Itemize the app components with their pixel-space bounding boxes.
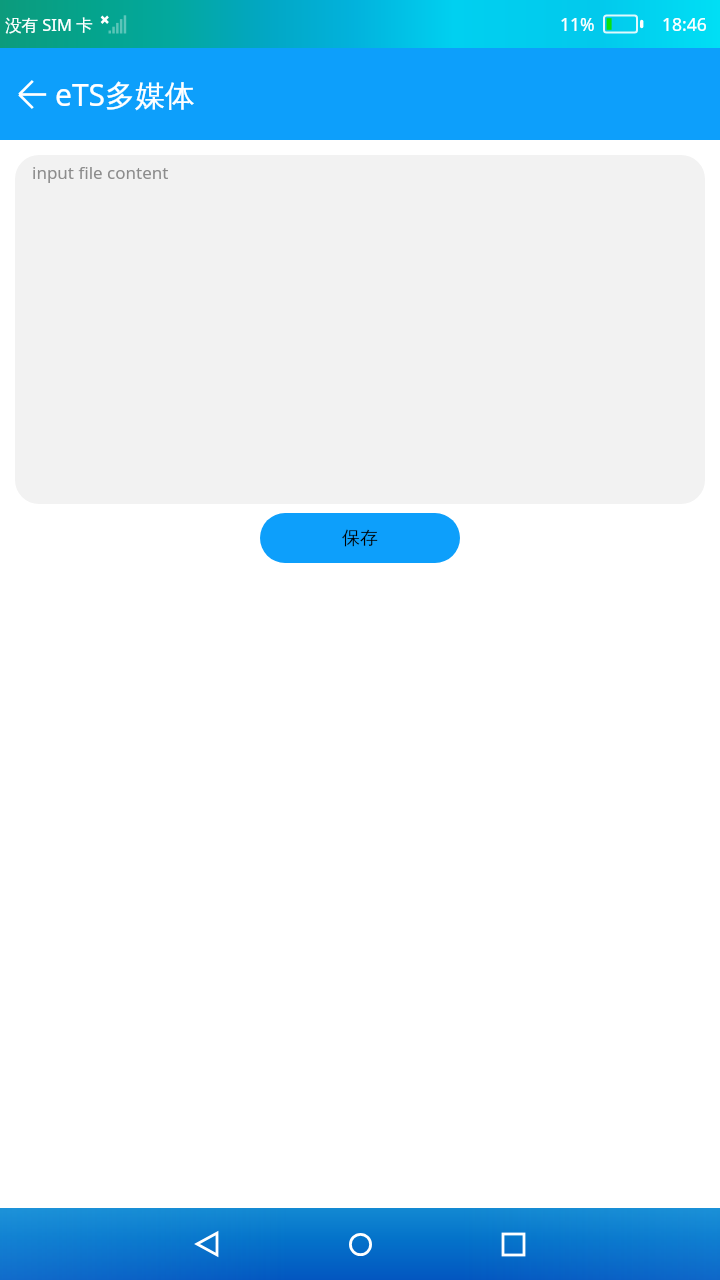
staticText: eTS多媒体	[55, 74, 196, 115]
button[interactable]: input file content	[15, 155, 705, 504]
button[interactable]: 保存	[260, 513, 460, 563]
button[interactable]: Recents	[486, 1217, 540, 1271]
staticText: 保存	[342, 527, 378, 550]
staticText: 没有 SIM 卡	[5, 13, 93, 36]
button[interactable]: Home	[333, 1217, 387, 1271]
staticText: input file content	[32, 161, 169, 184]
staticText: 11%	[560, 12, 595, 36]
staticText: 18:46	[662, 12, 707, 36]
button[interactable]: Back	[10, 72, 54, 116]
button[interactable]: Back	[180, 1217, 234, 1271]
